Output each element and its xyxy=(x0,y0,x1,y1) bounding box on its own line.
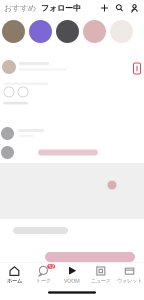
button[interactable]: おすすめ xyxy=(4,3,36,13)
button[interactable]: Comment xyxy=(18,87,28,97)
staticText: ウォレット xyxy=(117,277,142,284)
staticText: ホーム xyxy=(7,277,22,284)
button[interactable]: Story 3 xyxy=(56,20,79,43)
button[interactable]: Like xyxy=(4,87,14,97)
button[interactable]: New post xyxy=(97,4,112,12)
button[interactable]: Story 4 xyxy=(83,20,106,43)
staticText: おすすめ xyxy=(4,3,36,13)
staticText: 12 xyxy=(48,263,54,270)
button[interactable]: 12 xyxy=(29,264,58,286)
button[interactable]: ウォレット xyxy=(115,264,144,286)
button[interactable]: ニュース xyxy=(86,264,115,286)
staticText: VOOM xyxy=(64,277,80,284)
button[interactable]: VOOM xyxy=(58,264,86,286)
button[interactable]: Ad xyxy=(133,60,141,74)
button[interactable]: Story 1 xyxy=(2,20,25,43)
button[interactable]: Story 2 xyxy=(29,20,52,43)
staticText: ニュース xyxy=(91,277,111,284)
staticText: トーク xyxy=(36,277,51,284)
button[interactable]: Search xyxy=(112,4,127,12)
button[interactable]: ホーム xyxy=(0,264,29,286)
button[interactable]: フォロー中 xyxy=(36,3,81,13)
button[interactable]: Story 5 xyxy=(110,20,133,43)
staticText: フォロー中 xyxy=(41,3,81,13)
button[interactable]: Friends xyxy=(127,4,142,12)
